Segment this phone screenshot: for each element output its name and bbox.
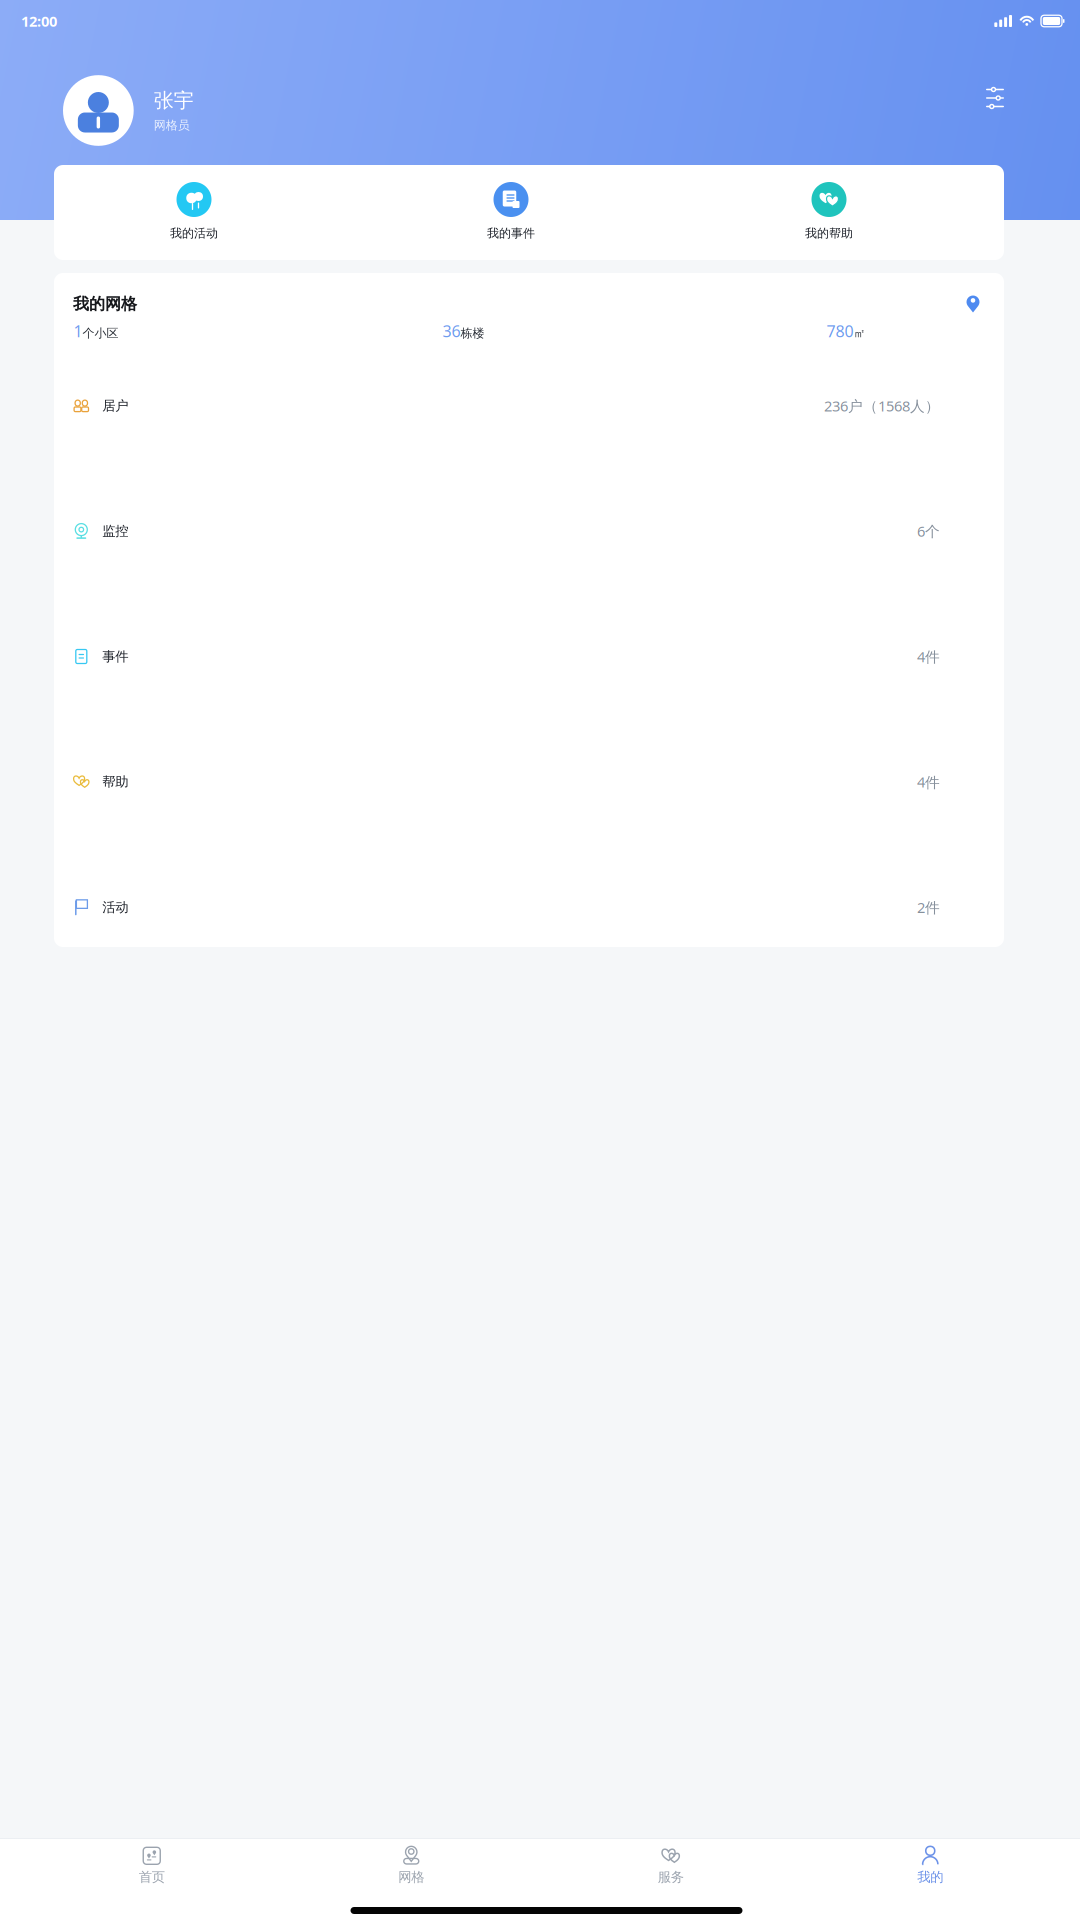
staticText: 780 [826,320,853,342]
button[interactable]: 服务 [541,1835,800,1889]
staticText: 36 [442,320,460,342]
button[interactable]: 监控 [54,492,1004,570]
button[interactable]: 居户 [54,367,1004,444]
staticText: 我的活动 [170,226,218,241]
staticText: 首页 [139,1869,165,1885]
staticText: 我的网格 [73,294,137,314]
staticText: 4件 [917,647,940,666]
button[interactable]: Locate grid [962,293,984,315]
staticText: 张宇 [154,88,194,113]
staticText: 网格 [398,1869,424,1885]
staticText: 事件 [102,648,128,665]
staticText: 栋楼 [460,326,484,340]
button[interactable]: 我的事件 [334,182,688,241]
staticText: 我的事件 [487,226,535,241]
staticText: 监控 [102,523,128,539]
staticText: 12:00 [21,11,57,31]
staticText: 我的 [917,1869,943,1885]
staticText: 1 [73,320,82,342]
staticText: 236户（1568人） [824,396,940,415]
staticText: 活动 [102,899,128,915]
button[interactable]: Filter settings [973,88,1017,132]
staticText: 帮助 [102,774,128,790]
button[interactable]: 我的活动 [54,182,334,241]
staticText: 6个 [917,521,940,541]
button[interactable]: 事件 [54,618,1004,695]
staticText: 我的帮助 [805,226,853,241]
staticText: 网格员 [154,118,190,133]
button[interactable]: 首页 [22,1835,281,1889]
button[interactable]: 网格 [281,1835,541,1889]
staticText: ㎡ [853,326,865,340]
staticText: 2件 [917,898,940,917]
button[interactable]: 帮助 [54,743,1004,821]
button[interactable]: 我的 [800,1835,1060,1889]
staticText: 个小区 [82,326,118,340]
staticText: 服务 [658,1869,684,1885]
staticText: 4件 [917,772,940,792]
button[interactable]: 活动 [54,869,1004,946]
staticText: 居户 [102,397,128,414]
button[interactable]: 我的帮助 [688,182,970,241]
